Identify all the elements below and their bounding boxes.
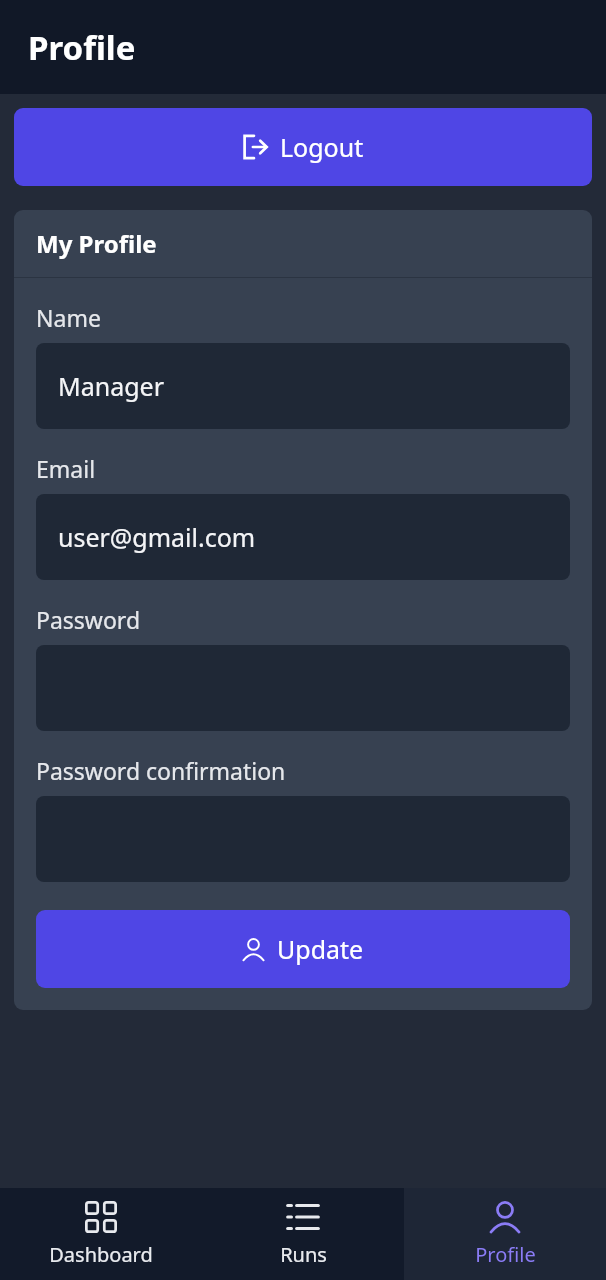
staticText: Password xyxy=(36,604,141,635)
staticText: Runs xyxy=(280,1241,327,1268)
other: Runs xyxy=(287,1201,319,1233)
staticText: Email xyxy=(36,453,96,484)
button[interactable]: Logout xyxy=(14,108,592,186)
staticText: Manager xyxy=(58,369,164,403)
staticText: Profile xyxy=(475,1241,536,1268)
button[interactable]: user@gmail.com xyxy=(36,494,570,580)
button[interactable]: Profile xyxy=(404,1188,606,1280)
staticText: Update xyxy=(277,932,364,966)
staticText: Name xyxy=(36,302,101,333)
button[interactable]: Dashboard xyxy=(0,1188,202,1280)
other: Profile xyxy=(242,938,265,961)
button[interactable]: Manager xyxy=(36,343,570,429)
button[interactable]: Profile xyxy=(36,910,570,988)
staticText: Logout xyxy=(280,130,364,164)
staticText: Password confirmation xyxy=(36,755,286,786)
other: Logout xyxy=(242,134,268,160)
button[interactable]: Runs xyxy=(202,1188,404,1280)
staticText: Dashboard xyxy=(49,1241,153,1268)
staticText: Profile xyxy=(28,25,136,70)
other: Profile xyxy=(489,1201,521,1233)
staticText: user@gmail.com xyxy=(58,520,256,554)
staticText: My Profile xyxy=(36,227,157,260)
other: Dashboard xyxy=(85,1201,117,1233)
